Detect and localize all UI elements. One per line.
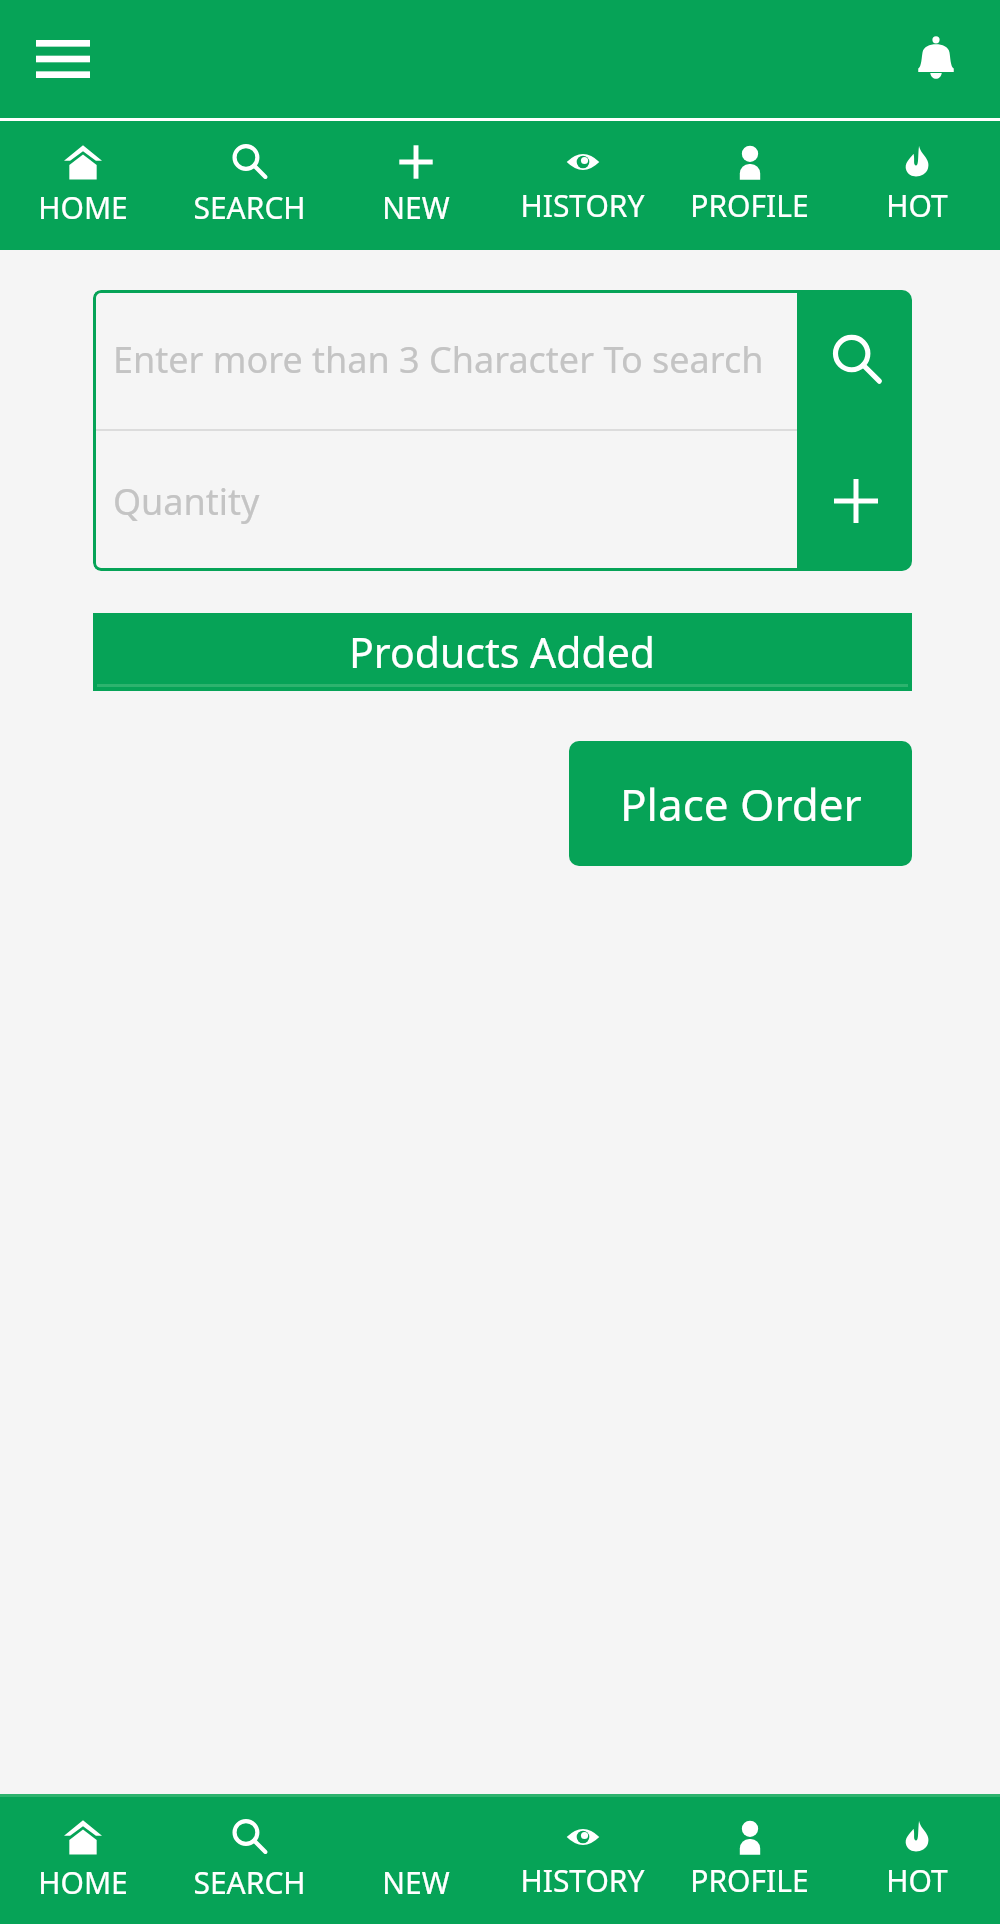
button[interactable]: NEW bbox=[332, 121, 499, 250]
button[interactable]: PROFILE bbox=[666, 121, 833, 250]
button[interactable]: HISTORY bbox=[499, 121, 666, 250]
staticText: HISTORY bbox=[520, 1860, 645, 1901]
staticText: SEARCH bbox=[193, 187, 306, 228]
staticText: Place Order bbox=[620, 774, 862, 834]
button[interactable]: HOT bbox=[833, 121, 1000, 250]
button[interactable]: HISTORY bbox=[499, 1797, 666, 1924]
staticText: Enter more than 3 Character To search bbox=[113, 335, 764, 384]
button[interactable]: Products Added bbox=[93, 613, 912, 691]
button[interactable]: Enter more than 3 Character To search bbox=[93, 290, 800, 429]
button[interactable]: NEW bbox=[332, 1797, 499, 1924]
staticText: NEW bbox=[382, 1862, 450, 1903]
staticText: HOT bbox=[886, 185, 948, 226]
button[interactable]: Place Order bbox=[569, 741, 912, 866]
staticText: HOME bbox=[38, 1862, 128, 1903]
button[interactable]: SEARCH bbox=[166, 1797, 332, 1924]
staticText: HOME bbox=[38, 187, 128, 228]
button[interactable]: HOT bbox=[833, 1797, 1000, 1924]
staticText: HOT bbox=[886, 1860, 948, 1901]
button[interactable]: PROFILE bbox=[666, 1797, 833, 1924]
staticText: PROFILE bbox=[690, 1860, 809, 1901]
staticText: Quantity bbox=[113, 477, 260, 526]
button[interactable]: Quantity bbox=[93, 431, 800, 571]
button[interactable]: Search bbox=[800, 290, 912, 430]
staticText: PROFILE bbox=[690, 185, 809, 226]
button[interactable]: SEARCH bbox=[166, 121, 332, 250]
button[interactable]: Notifications bbox=[900, 23, 972, 95]
staticText: HISTORY bbox=[520, 185, 645, 226]
button[interactable]: Open navigation menu bbox=[30, 31, 96, 87]
staticText: SEARCH bbox=[193, 1862, 306, 1903]
button[interactable]: HOME bbox=[0, 1797, 166, 1924]
button[interactable]: Add product bbox=[800, 430, 912, 571]
staticText: NEW bbox=[382, 187, 450, 228]
button[interactable]: HOME bbox=[0, 121, 166, 250]
staticText: Products Added bbox=[349, 624, 656, 680]
